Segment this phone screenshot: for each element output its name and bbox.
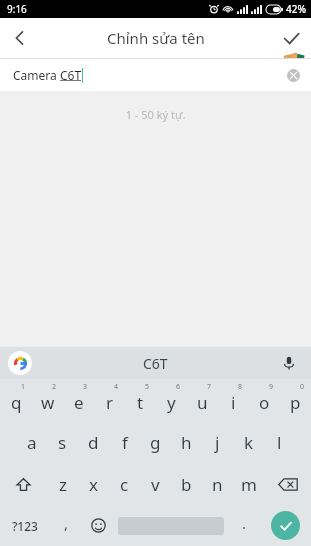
staticText: C6T (143, 354, 168, 373)
staticText: 9:16 (7, 2, 27, 16)
staticText: c (120, 473, 129, 496)
button[interactable]: b (171, 463, 202, 505)
button[interactable]: Google (8, 351, 32, 375)
staticText: 4 (114, 382, 119, 392)
button[interactable]: n (202, 463, 233, 505)
button[interactable]: Space (114, 505, 228, 546)
button[interactable]: d (78, 421, 109, 463)
staticText: 1 - 50 ký tự. (0, 107, 311, 122)
staticText: i (231, 391, 236, 414)
staticText: 9 (269, 382, 274, 392)
staticText: 8 (238, 382, 243, 392)
button[interactable]: v (140, 463, 171, 505)
button[interactable]: Clear text (283, 65, 303, 85)
staticText: 1 (21, 382, 26, 392)
button[interactable]: . (228, 505, 260, 546)
staticText: z (59, 473, 67, 496)
staticText: y (167, 391, 176, 414)
button[interactable]: a (16, 421, 47, 463)
staticText: w (41, 391, 55, 414)
staticText: j (215, 431, 220, 454)
button[interactable]: Voice input (277, 351, 301, 375)
staticText: m (241, 473, 257, 496)
staticText: ?123 (12, 518, 38, 534)
staticText: Chỉnh sửa tên (107, 28, 205, 48)
staticText: o (259, 391, 270, 414)
button[interactable]: q (0, 379, 32, 421)
staticText: k (244, 431, 254, 454)
staticText: n (212, 473, 223, 496)
button[interactable]: Back (0, 18, 40, 58)
button[interactable]: z (47, 463, 78, 505)
staticText: C6T (60, 67, 82, 83)
button[interactable]: C6T (143, 354, 168, 373)
button[interactable]: Confirm (271, 18, 311, 58)
button[interactable]: Enter (260, 505, 311, 546)
staticText: h (181, 431, 192, 454)
button[interactable]: i (218, 379, 249, 421)
staticText: 2 (52, 382, 57, 392)
button[interactable]: u (187, 379, 218, 421)
button[interactable]: x (78, 463, 109, 505)
staticText: 0 (300, 382, 305, 392)
button[interactable]: m (233, 463, 264, 505)
staticText: v (151, 473, 160, 496)
button[interactable]: p (280, 379, 311, 421)
button[interactable]: r (94, 379, 125, 421)
staticText: l (277, 431, 282, 454)
button[interactable]: w (32, 379, 63, 421)
button[interactable]: Emoji (82, 505, 114, 546)
button[interactable]: , (50, 505, 82, 546)
button[interactable]: k (233, 421, 264, 463)
button[interactable]: j (202, 421, 233, 463)
staticText: f (122, 431, 128, 454)
staticText: , (64, 513, 69, 533)
button[interactable]: f (109, 421, 140, 463)
button[interactable]: ?123 (0, 505, 50, 546)
staticText: b (181, 473, 192, 496)
button[interactable]: y (156, 379, 187, 421)
staticText: q (11, 391, 22, 414)
staticText: t (137, 391, 144, 414)
button[interactable]: Shift (0, 463, 47, 505)
staticText: 3 (83, 382, 88, 392)
staticText: 5 (145, 382, 150, 392)
staticText: 6 (176, 382, 181, 392)
staticText: 7 (207, 382, 212, 392)
staticText: 42% (286, 2, 306, 16)
staticText: Camera (13, 67, 60, 83)
button[interactable]: h (171, 421, 202, 463)
button[interactable]: c (109, 463, 140, 505)
staticText: e (74, 391, 84, 414)
staticText: . (242, 513, 247, 533)
staticText: s (58, 431, 67, 454)
staticText: p (290, 391, 301, 414)
button[interactable]: o (249, 379, 280, 421)
staticText: d (88, 431, 99, 454)
staticText: r (106, 391, 114, 414)
button[interactable]: l (264, 421, 295, 463)
button[interactable]: t (125, 379, 156, 421)
button[interactable]: s (47, 421, 78, 463)
button[interactable]: e (63, 379, 94, 421)
staticText: u (197, 391, 208, 414)
staticText: x (89, 473, 98, 496)
staticText: a (27, 431, 37, 454)
button[interactable]: g (140, 421, 171, 463)
button[interactable]: Camera (0, 59, 311, 91)
button[interactable]: Backspace (264, 463, 311, 505)
staticText: g (150, 431, 161, 454)
